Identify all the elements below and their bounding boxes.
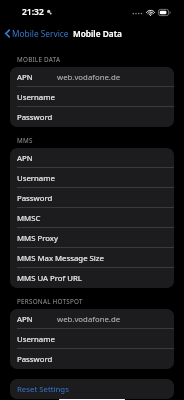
button[interactable]: Username (10, 329, 174, 349)
button[interactable]: MMS UA Prof URL (10, 268, 174, 288)
button[interactable]: Reset Settings (10, 379, 174, 399)
button[interactable]: APN (10, 148, 174, 168)
staticText: Password (17, 112, 53, 123)
staticText: MMS UA Prof URL (17, 273, 82, 284)
button[interactable]: Username (10, 168, 174, 188)
staticText: Username (17, 92, 55, 103)
staticText: web.vodafone.de (57, 72, 121, 83)
staticText: Mobile Service (12, 28, 69, 39)
button[interactable]: Username (10, 87, 174, 107)
staticText: Password (17, 354, 53, 365)
staticText: 21:32 (22, 6, 44, 18)
staticText: Reset Settings (17, 384, 69, 395)
staticText: Username (17, 173, 55, 184)
button[interactable]: Password (10, 188, 174, 208)
button[interactable]: MMS Max Message Size (10, 248, 174, 268)
staticText: MOBILE DATA (17, 55, 61, 64)
button[interactable]: MMS Proxy (10, 228, 174, 248)
button[interactable]: Password (10, 349, 174, 369)
staticText: APN (17, 72, 33, 83)
button[interactable]: APN (10, 309, 174, 329)
staticText: web.vodafone.de (57, 314, 121, 325)
staticText: MMS Max Message Size (17, 253, 104, 264)
button[interactable]: MMSC (10, 208, 174, 228)
staticText: MMS Proxy (17, 233, 58, 244)
staticText: Mobile Data (73, 28, 122, 39)
staticText: MMS (17, 136, 33, 145)
staticText: APN (17, 314, 33, 325)
staticText: Username (17, 334, 55, 345)
staticText: PERSONAL HOTSPOT (17, 297, 83, 306)
button[interactable]: Mobile Service (3, 28, 71, 39)
button[interactable]: Password (10, 107, 174, 127)
staticText: APN (17, 153, 33, 164)
button[interactable]: APN (10, 67, 174, 87)
staticText: MMSC (17, 213, 41, 224)
staticText: Password (17, 193, 53, 204)
